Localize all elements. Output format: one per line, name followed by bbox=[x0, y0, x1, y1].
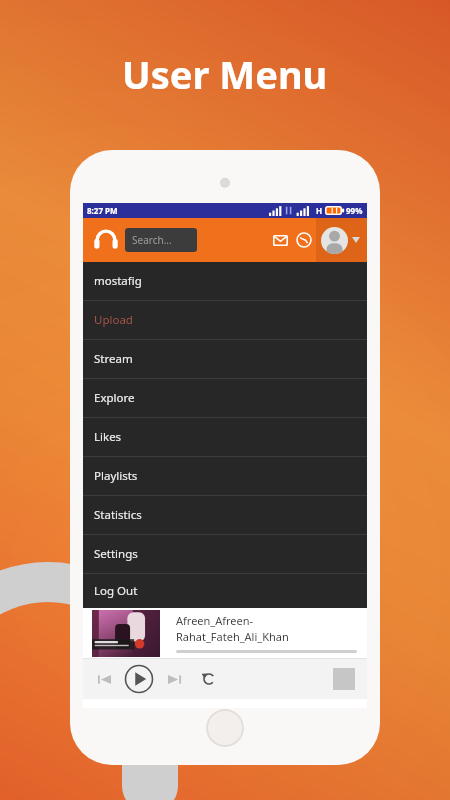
staticText: Statistics bbox=[94, 507, 142, 523]
button[interactable]: Account menu bbox=[316, 218, 367, 262]
staticText: Search... bbox=[132, 233, 172, 247]
button[interactable]: Settings bbox=[83, 535, 367, 573]
staticText: 8:27 PM bbox=[87, 205, 118, 216]
button[interactable]: Upload bbox=[83, 301, 367, 339]
button[interactable]: Likes bbox=[83, 418, 367, 456]
button[interactable]: App logo bbox=[91, 225, 121, 255]
button[interactable]: Log Out bbox=[83, 574, 367, 608]
staticText: Playlists bbox=[94, 468, 138, 484]
button[interactable]: Previous bbox=[93, 668, 115, 690]
staticText: Stream bbox=[94, 351, 133, 367]
staticText: Upload bbox=[94, 312, 133, 328]
staticText: User Menu bbox=[122, 48, 328, 100]
button[interactable]: Home bbox=[206, 709, 244, 747]
staticText: Rahat_Fateh_Ali_Khan bbox=[176, 629, 289, 644]
button[interactable]: Messages bbox=[268, 225, 292, 255]
staticText: H bbox=[316, 205, 323, 216]
button[interactable]: Language bbox=[292, 225, 316, 255]
button[interactable]: Stream bbox=[83, 340, 367, 378]
button[interactable]: Repeat bbox=[198, 668, 220, 690]
button[interactable]: Explore bbox=[83, 379, 367, 417]
button[interactable]: Afreen_Afreen- bbox=[83, 608, 367, 658]
button[interactable]: Play bbox=[124, 664, 154, 694]
staticText: Afreen_Afreen- bbox=[176, 613, 254, 628]
button[interactable]: Search... bbox=[125, 228, 197, 252]
staticText: Log Out bbox=[94, 583, 138, 599]
button[interactable]: Playlists bbox=[83, 457, 367, 495]
staticText: Likes bbox=[94, 429, 122, 445]
button[interactable]: Statistics bbox=[83, 496, 367, 534]
button[interactable]: mostafig bbox=[83, 262, 367, 300]
staticText: Explore bbox=[94, 390, 135, 406]
staticText: mostafig bbox=[94, 273, 142, 289]
staticText: 99% bbox=[346, 205, 363, 216]
staticText: Settings bbox=[94, 546, 138, 562]
button[interactable]: Next bbox=[163, 668, 185, 690]
